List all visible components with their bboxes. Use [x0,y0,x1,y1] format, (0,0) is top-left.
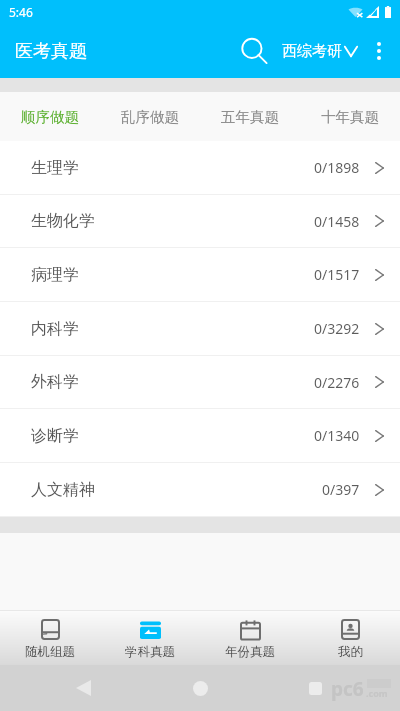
staticText: 年份真题 [225,644,275,660]
staticText: 学科真题 [125,644,175,660]
button[interactable]: 乱序做题 [100,92,200,141]
staticText: 0/1458 [314,212,360,231]
staticText: 0/1898 [314,158,360,177]
staticText: 0/1517 [314,265,360,284]
button[interactable]: 随机组题 [0,611,100,665]
staticText: .com [366,687,388,699]
button[interactable]: Home [186,674,214,702]
button[interactable]: 病理学 [0,248,400,301]
button[interactable]: More options [368,35,400,67]
staticText: 人文精神 [31,480,95,500]
button[interactable]: 顺序做题 [0,92,100,141]
staticText: 生物化学 [31,211,95,231]
staticText: 乱序做题 [121,108,179,126]
button[interactable]: 五年真题 [200,92,300,141]
button[interactable]: Back [69,674,97,702]
button[interactable]: 十年真题 [300,92,400,141]
button[interactable]: 西综考研 [279,34,361,69]
button[interactable]: Search [236,33,272,69]
staticText: 生理学 [31,158,79,178]
staticText: 顺序做题 [21,108,79,126]
staticText: 0/2276 [314,373,360,392]
staticText: 0/3292 [314,319,360,338]
staticText: 十年真题 [321,108,379,126]
button[interactable]: Recents [301,674,329,702]
staticText: 0/397 [322,480,360,499]
button[interactable]: 生物化学 [0,195,400,247]
button[interactable]: 人文精神 [0,463,400,516]
staticText: 医考真题 [15,40,87,63]
staticText: 诊断学 [31,426,79,446]
button[interactable]: 内科学 [0,302,400,355]
staticText: pc6 [331,676,364,702]
button[interactable]: 外科学 [0,356,400,408]
staticText: 外科学 [31,372,79,392]
button[interactable]: 年份真题 [200,611,300,665]
staticText: 5:46 [9,4,33,20]
button[interactable]: 学科真题 [100,611,200,665]
staticText: 内科学 [31,319,79,339]
staticText: 我的 [338,644,363,660]
staticText: 五年真题 [221,108,279,126]
staticText: 0/1340 [314,426,360,445]
button[interactable]: 我的 [300,611,400,665]
staticText: 随机组题 [25,644,75,660]
button[interactable]: 生理学 [0,141,400,194]
button[interactable]: 诊断学 [0,409,400,462]
staticText: 西综考研 [282,42,342,61]
staticText: 病理学 [31,265,79,285]
